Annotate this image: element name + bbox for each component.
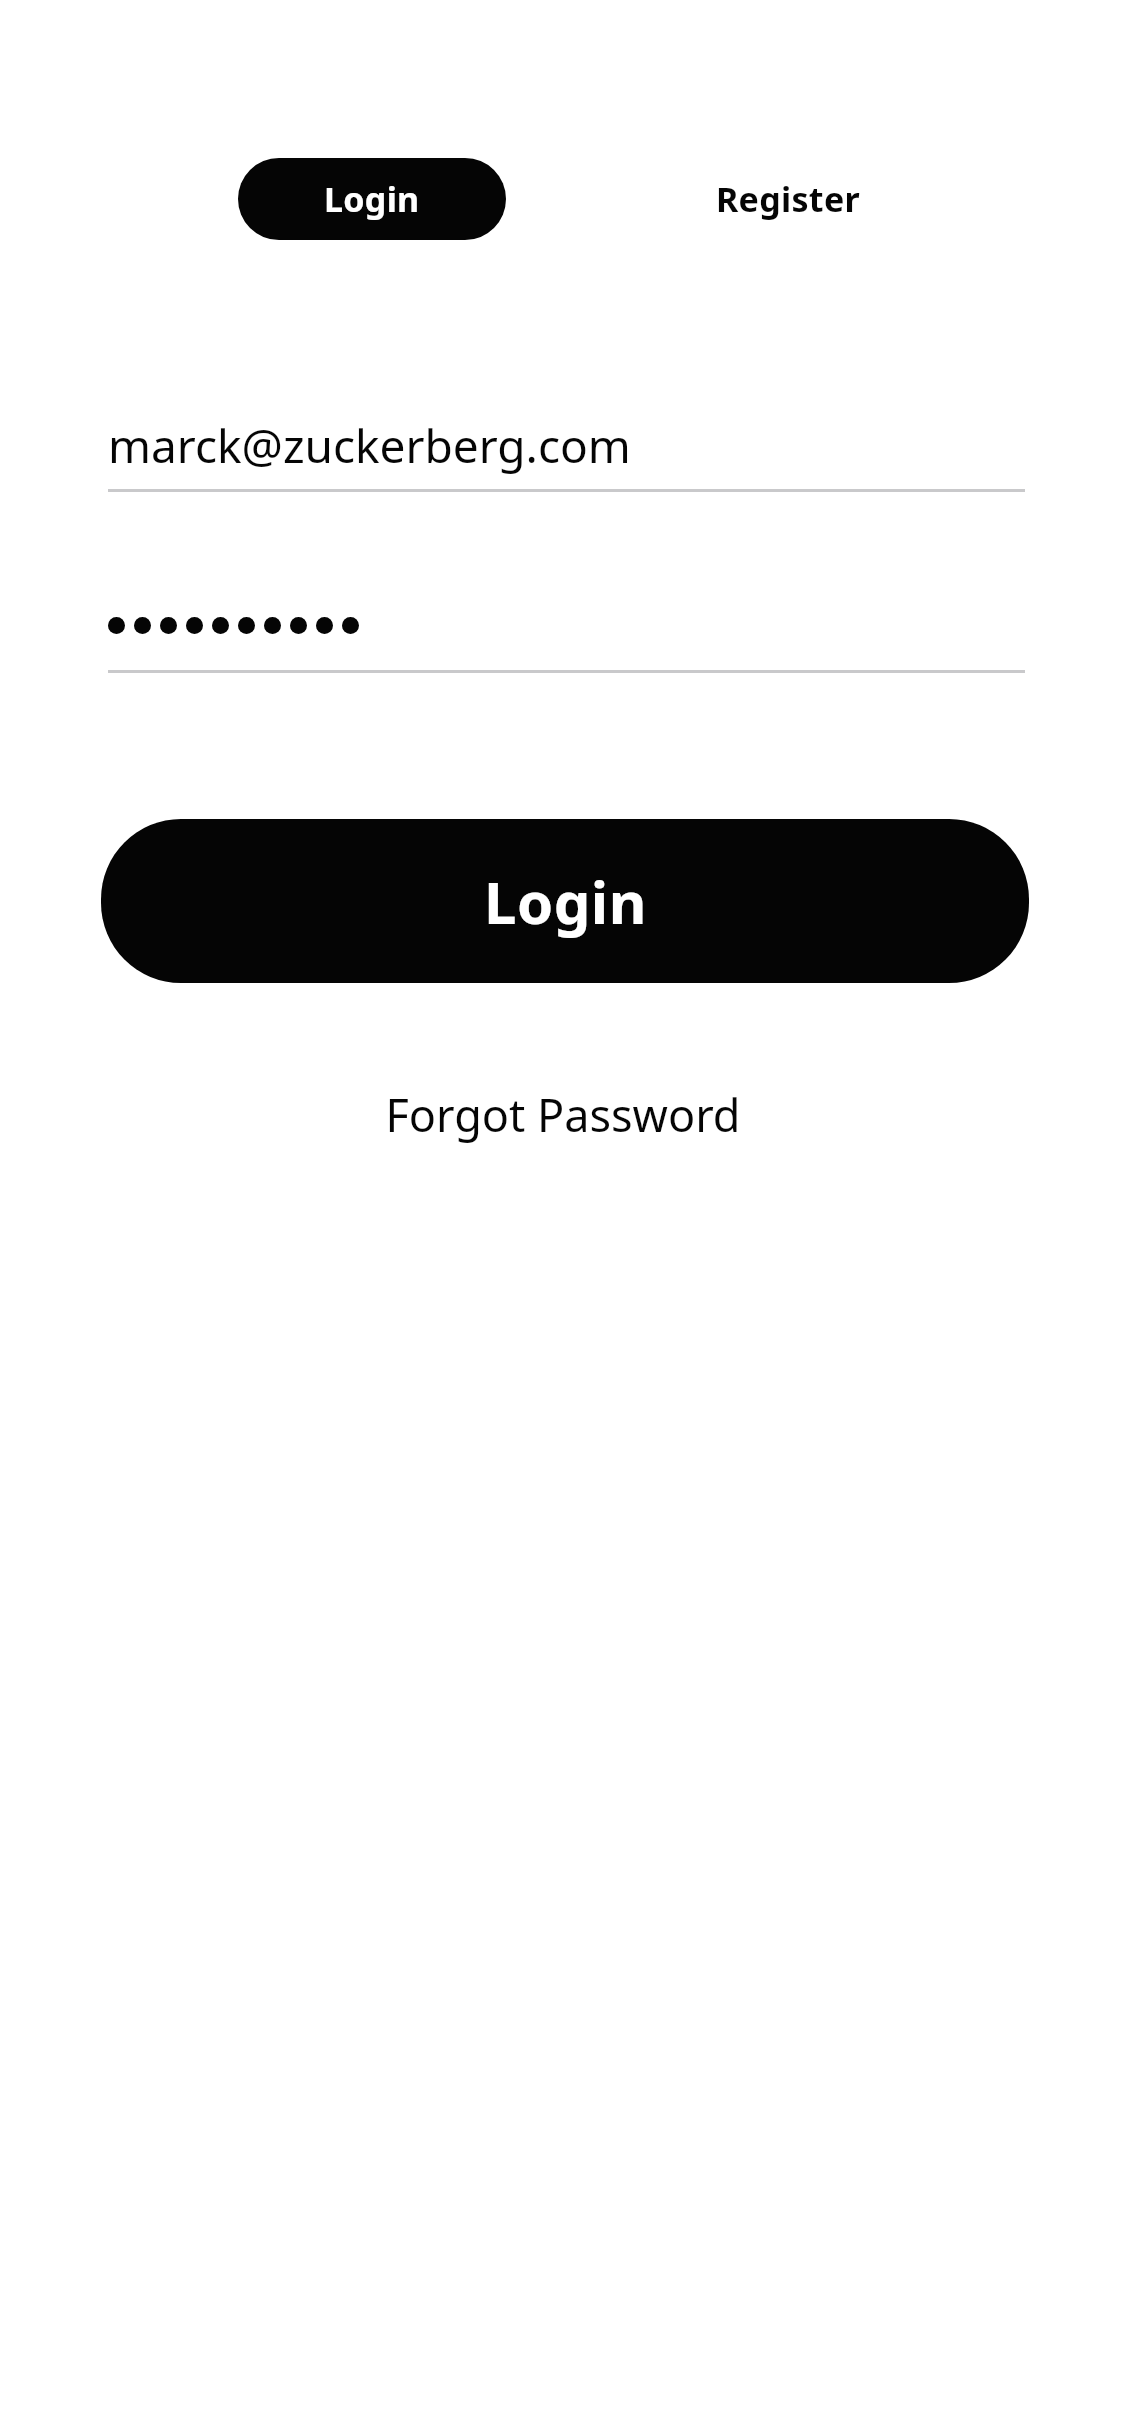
button[interactable] — [108, 578, 1025, 673]
staticText: Forgot Password — [385, 1084, 741, 1145]
button[interactable]: Register — [640, 158, 936, 240]
staticText: Login — [324, 176, 420, 222]
staticText: Register — [716, 176, 860, 222]
button[interactable]: marck@zuckerberg.com — [108, 398, 1025, 492]
button[interactable]: Login — [238, 158, 506, 240]
button[interactable]: Forgot Password — [0, 1075, 1125, 1153]
staticText: Login — [484, 862, 647, 941]
staticText: marck@zuckerberg.com — [108, 414, 631, 477]
button[interactable]: Login — [101, 819, 1029, 983]
